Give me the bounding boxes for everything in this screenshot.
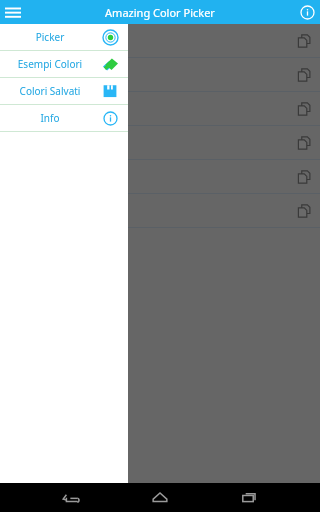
button[interactable]: Copy <box>295 134 313 152</box>
button[interactable]: Copy <box>0 24 320 57</box>
button[interactable]: Colori Salvati <box>0 78 128 104</box>
button[interactable]: Copy <box>0 58 320 91</box>
button[interactable]: Copy <box>295 168 313 186</box>
button[interactable]: Info <box>297 2 317 22</box>
button[interactable]: Copy <box>0 160 320 193</box>
button[interactable]: Back <box>50 483 90 512</box>
staticText: Info <box>0 111 100 125</box>
staticText: Picker <box>0 30 100 44</box>
button[interactable]: Open navigation drawer <box>0 0 26 24</box>
button[interactable]: Copy <box>295 66 313 84</box>
button[interactable]: Copy <box>295 32 313 50</box>
button[interactable]: Copy <box>0 92 320 125</box>
staticText: Amazing Color Picker <box>105 5 215 20</box>
staticText: Colori Salvati <box>0 84 100 98</box>
staticText: Esempi Colori <box>0 57 100 71</box>
button[interactable]: Copy <box>0 126 320 159</box>
button[interactable]: Copy <box>0 194 320 227</box>
button[interactable]: Esempi Colori <box>0 51 128 77</box>
button[interactable]: Copy <box>295 202 313 220</box>
button[interactable]: Home <box>140 483 180 512</box>
button[interactable]: Recent apps <box>230 483 270 512</box>
button[interactable]: Copy <box>295 100 313 118</box>
button[interactable]: Info <box>0 105 128 131</box>
button[interactable]: Picker <box>0 24 128 50</box>
